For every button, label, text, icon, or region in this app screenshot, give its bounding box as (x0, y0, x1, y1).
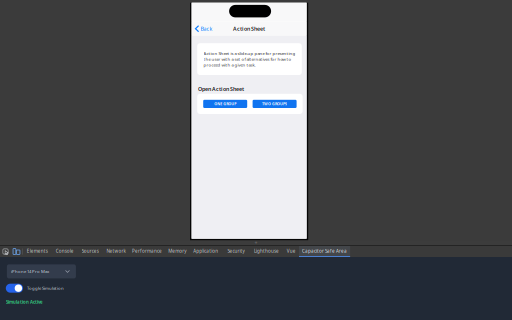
staticText: Network (106, 248, 125, 254)
button[interactable]: TWO GROUPS (253, 100, 297, 108)
button[interactable]: Toggle Simulation (0, 284, 64, 293)
staticText: Action Sheet (233, 25, 265, 32)
button[interactable]: Back (192, 23, 212, 34)
button[interactable]: ONE GROUP (203, 100, 247, 108)
staticText: Back (200, 25, 212, 32)
button[interactable]: Memory (165, 246, 189, 257)
button[interactable]: iPhone 14 Pro Max (7, 264, 76, 278)
staticText: + (254, 239, 257, 247)
button[interactable]: Elements (23, 246, 52, 257)
button[interactable]: Toggle device toolbar (11, 246, 22, 257)
staticText: ONE GROUP (214, 101, 236, 106)
staticText: Action Sheet is a slide-up pane for pres… (203, 50, 295, 68)
staticText: Lighthouse (254, 248, 279, 254)
button[interactable]: Application (189, 246, 222, 257)
button[interactable]: Performance (129, 246, 165, 257)
staticText: Vue (287, 248, 296, 254)
button[interactable]: Lighthouse (250, 246, 283, 257)
button[interactable]: Inspect element (0, 246, 11, 257)
staticText: Toggle Simulation (27, 285, 64, 291)
staticText: Sources (82, 248, 99, 254)
staticText: TWO GROUPS (262, 101, 287, 106)
staticText: Simulation Active (6, 299, 43, 305)
button[interactable]: Security (222, 246, 250, 257)
button[interactable]: Network (103, 246, 129, 257)
staticText: Capacitor Safe Area (302, 248, 347, 254)
button[interactable]: Capacitor Safe Area (299, 246, 350, 257)
staticText: Open Action Sheet (198, 85, 244, 93)
staticText: Console (56, 248, 74, 254)
staticText: Application (193, 248, 218, 254)
staticText: Performance (132, 248, 162, 254)
button[interactable]: Vue (283, 246, 299, 257)
staticText: Memory (168, 248, 186, 254)
button[interactable]: Sources (77, 246, 103, 257)
staticText: iPhone 14 Pro Max (11, 268, 49, 274)
staticText: Security (227, 248, 244, 254)
button[interactable]: Console (52, 246, 77, 257)
staticText: Elements (27, 248, 48, 254)
